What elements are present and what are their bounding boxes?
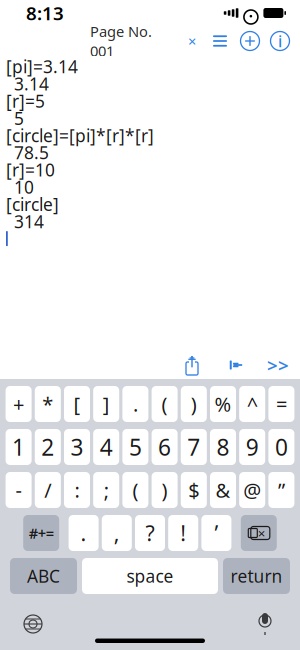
staticText: [circle]=[pi]*[r]*[r]: [6, 124, 154, 147]
staticText: 5: [129, 432, 142, 462]
button[interactable]: [: [64, 386, 90, 422]
button[interactable]: 2: [35, 429, 61, 465]
staticText: ABC: [27, 564, 60, 587]
button[interactable]: Share: [176, 352, 208, 378]
button[interactable]: (: [122, 472, 148, 508]
staticText: [circle]: [6, 193, 59, 216]
staticText: %: [214, 391, 231, 417]
button[interactable]: ;: [93, 472, 119, 508]
button[interactable]: Add: [235, 26, 265, 56]
staticText: return: [230, 564, 282, 587]
staticText: 5: [14, 107, 24, 130]
button[interactable]: Delete: [241, 515, 277, 551]
button[interactable]: Next keyboard: [16, 607, 50, 641]
staticText: ”: [278, 477, 285, 503]
staticText: 3: [70, 432, 83, 462]
button[interactable]: Info: [265, 26, 295, 56]
staticText: /: [44, 477, 51, 503]
button[interactable]: %: [210, 386, 236, 422]
button[interactable]: ABC: [10, 558, 77, 594]
staticText: &: [215, 477, 230, 503]
staticText: *: [42, 391, 53, 417]
staticText: [: [73, 391, 80, 417]
staticText: 7: [187, 432, 200, 462]
button[interactable]: ): [152, 472, 178, 508]
staticText: 8:13: [26, 1, 64, 25]
button[interactable]: ^: [239, 386, 265, 422]
button[interactable]: (: [152, 386, 178, 422]
button[interactable]: .: [122, 386, 148, 422]
button[interactable]: Jump to start: [222, 352, 250, 378]
staticText: ): [162, 477, 168, 503]
button[interactable]: ): [181, 386, 207, 422]
button[interactable]: ’: [201, 515, 231, 551]
staticText: ×: [258, 524, 266, 542]
staticText: [r]=5: [6, 89, 45, 112]
staticText: ,: [114, 519, 120, 547]
staticText: 9: [246, 432, 259, 462]
button[interactable]: 9: [239, 429, 265, 465]
staticText: 3.14: [14, 72, 49, 95]
staticText: (: [132, 477, 138, 503]
button[interactable]: Next: [264, 352, 292, 378]
staticText: ×: [188, 31, 196, 51]
button[interactable]: Menu: [205, 26, 235, 56]
staticText: =: [276, 391, 287, 417]
button[interactable]: ?: [135, 515, 165, 551]
button[interactable]: 8: [210, 429, 236, 465]
staticText: ’: [214, 519, 218, 547]
button[interactable]: =: [268, 386, 294, 422]
button[interactable]: Dictation: [248, 607, 282, 641]
staticText: #+=: [29, 523, 54, 543]
staticText: [r]=10: [6, 158, 55, 181]
staticText: @: [243, 477, 261, 503]
button[interactable]: $: [181, 472, 207, 508]
button[interactable]: return: [223, 558, 290, 594]
staticText: ?: [145, 519, 154, 547]
button[interactable]: &: [210, 472, 236, 508]
staticText: 78.5: [14, 141, 49, 164]
button[interactable]: +: [6, 386, 32, 422]
button[interactable]: 4: [93, 429, 119, 465]
button[interactable]: 1: [6, 429, 32, 465]
button[interactable]: Close: [179, 26, 205, 56]
staticText: 0: [275, 432, 288, 462]
staticText: :: [74, 477, 79, 503]
button[interactable]: 5: [122, 429, 148, 465]
button[interactable]: @: [239, 472, 265, 508]
button[interactable]: ,: [102, 515, 132, 551]
staticText: 4: [100, 432, 113, 462]
button[interactable]: 7: [181, 429, 207, 465]
button[interactable]: !: [168, 515, 198, 551]
button[interactable]: .: [69, 515, 99, 551]
button[interactable]: #+=: [23, 515, 59, 551]
button[interactable]: space: [82, 558, 218, 594]
staticText: (: [162, 391, 168, 417]
staticText: 10: [14, 175, 34, 198]
button[interactable]: :: [64, 472, 90, 508]
staticText: .: [133, 391, 138, 417]
button[interactable]: ]: [93, 386, 119, 422]
button[interactable]: 0: [268, 429, 294, 465]
button[interactable]: 3: [64, 429, 90, 465]
staticText: i: [278, 30, 282, 52]
staticText: ;: [104, 477, 109, 503]
button[interactable]: *: [35, 386, 61, 422]
staticText: ^: [247, 391, 258, 417]
staticText: $: [188, 477, 199, 503]
staticText: >>: [267, 353, 289, 377]
staticText: 314: [14, 210, 44, 233]
staticText: Page No.001: [90, 21, 152, 60]
staticText: 8: [216, 432, 229, 462]
staticText: 2: [41, 432, 54, 462]
button[interactable]: ”: [268, 472, 294, 508]
button[interactable]: 6: [152, 429, 178, 465]
button[interactable]: /: [35, 472, 61, 508]
staticText: [pi]=3.14: [6, 55, 78, 78]
staticText: .: [81, 519, 87, 547]
staticText: 1: [12, 432, 25, 462]
staticText: ): [191, 391, 197, 417]
staticText: space: [126, 564, 173, 587]
staticText: !: [180, 519, 186, 547]
button[interactable]: -: [6, 472, 32, 508]
